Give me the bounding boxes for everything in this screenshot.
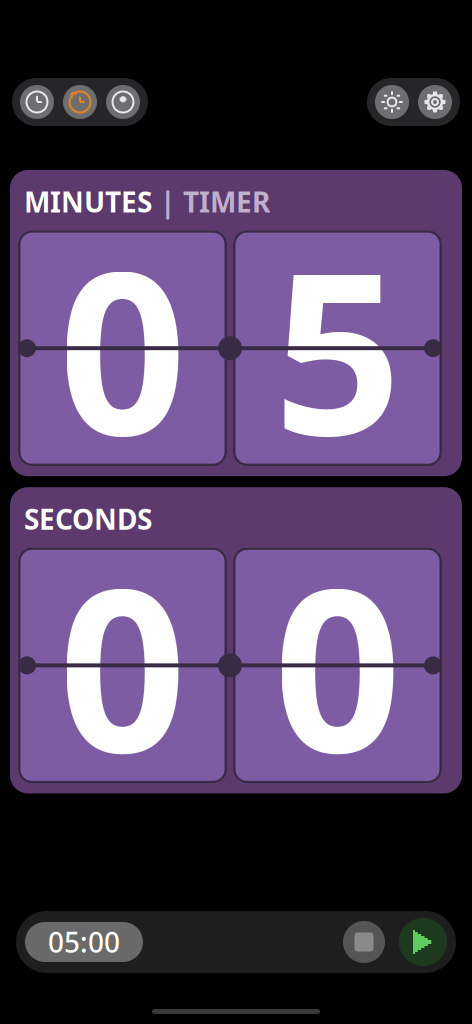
staticText: TIMER	[183, 183, 270, 220]
staticText: MINUTES	[24, 183, 152, 220]
staticText: 5	[273, 199, 401, 497]
button[interactable]: 05:00	[25, 922, 143, 962]
button[interactable]: Brightness	[375, 85, 409, 119]
button[interactable]: Start	[399, 918, 447, 966]
staticText: 0	[58, 199, 186, 497]
button[interactable]: Stopwatch	[106, 85, 140, 119]
staticText: SECONDS	[24, 500, 152, 537]
button[interactable]: Stop	[343, 921, 385, 963]
staticText: 0	[58, 517, 186, 814]
staticText: 05:00	[48, 923, 120, 961]
button[interactable]: Settings	[418, 85, 452, 119]
staticText: |	[160, 183, 175, 220]
button[interactable]: Timer	[63, 85, 97, 119]
button[interactable]: Clock	[20, 85, 54, 119]
staticText: 0	[273, 517, 401, 814]
